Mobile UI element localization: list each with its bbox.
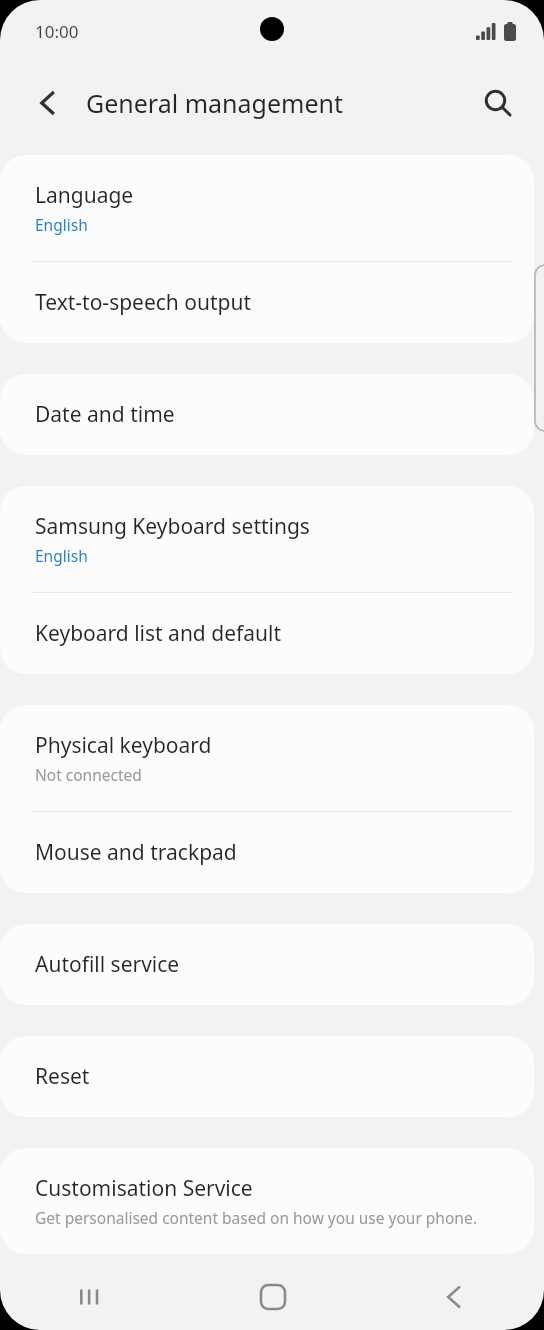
- staticText: Reset: [35, 1062, 90, 1091]
- staticText: Mouse and trackpad: [35, 838, 237, 867]
- button[interactable]: Mouse and trackpad: [0, 812, 534, 893]
- button[interactable]: Search: [472, 77, 524, 129]
- staticText: English: [35, 214, 88, 235]
- button[interactable]: Date and time: [0, 374, 534, 455]
- button[interactable]: Samsung Keyboard settings: [0, 486, 534, 592]
- staticText: Keyboard list and default: [35, 619, 281, 648]
- button[interactable]: Customisation Service: [0, 1148, 534, 1254]
- button[interactable]: Text-to-speech output: [0, 262, 534, 343]
- button[interactable]: Reset: [0, 1036, 534, 1117]
- staticText: Samsung Keyboard settings: [35, 512, 310, 541]
- button[interactable]: Back: [363, 1264, 544, 1330]
- staticText: Not connected: [35, 764, 142, 785]
- button[interactable]: Recent apps: [0, 1264, 182, 1330]
- staticText: Get personalised content based on how yo…: [35, 1207, 477, 1228]
- button[interactable]: Language: [0, 155, 534, 261]
- button[interactable]: Physical keyboard: [0, 705, 534, 811]
- staticText: Physical keyboard: [35, 731, 212, 760]
- staticText: General management: [86, 86, 343, 120]
- staticText: Autofill service: [35, 950, 180, 979]
- staticText: Text-to-speech output: [35, 288, 252, 317]
- staticText: 10:00: [35, 20, 79, 43]
- button[interactable]: Back: [22, 77, 74, 129]
- staticText: Date and time: [35, 400, 175, 429]
- staticText: Language: [35, 181, 134, 210]
- button[interactable]: Keyboard list and default: [0, 593, 534, 674]
- button[interactable]: Autofill service: [0, 924, 534, 1005]
- staticText: Customisation Service: [35, 1174, 253, 1203]
- button[interactable]: Home: [182, 1264, 363, 1330]
- staticText: English: [35, 545, 88, 566]
